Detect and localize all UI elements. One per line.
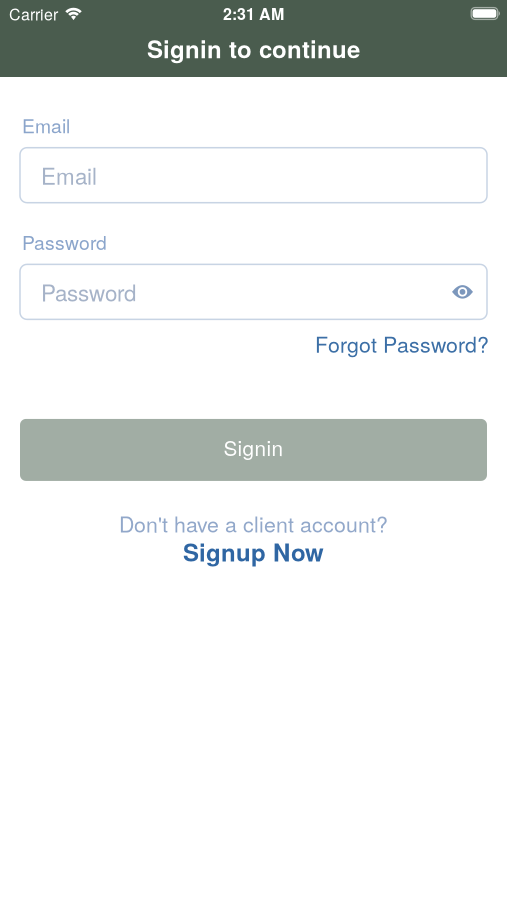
staticText: Forgot Password?: [315, 328, 489, 359]
staticText: Password: [22, 228, 107, 255]
button[interactable]: Show password: [452, 285, 473, 299]
staticText: 2:31 AM: [223, 2, 284, 25]
button[interactable]: Forgot Password?: [315, 328, 489, 359]
staticText: Signin to continue: [147, 31, 360, 66]
staticText: Email: [22, 111, 70, 139]
button[interactable]: Signup Now: [183, 539, 324, 574]
staticText: Signup Now: [183, 534, 324, 569]
staticText: Password: [41, 276, 136, 308]
staticText: Signin: [223, 432, 283, 462]
staticText: Don't have a client account?: [119, 508, 388, 538]
button[interactable]: Signin: [20, 419, 487, 481]
staticText: Carrier: [9, 2, 58, 25]
staticText: Email: [41, 159, 97, 191]
